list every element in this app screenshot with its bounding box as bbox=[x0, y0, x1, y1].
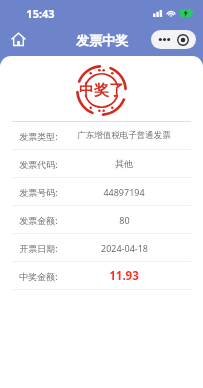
staticText: 广东增值税电子普通发票 bbox=[77, 130, 171, 141]
staticText: 2024-04-18 bbox=[101, 242, 148, 254]
button[interactable]: 发票号码: bbox=[0, 178, 203, 205]
staticText: 中奖金额: bbox=[19, 270, 58, 282]
staticText: 中奖了 bbox=[79, 81, 124, 100]
staticText: 发票中奖 bbox=[76, 32, 128, 48]
staticText: 发票金额: bbox=[19, 214, 58, 226]
staticText: 发票代码: bbox=[19, 158, 58, 170]
staticText: 15:43 bbox=[26, 6, 55, 21]
staticText: 44897194 bbox=[103, 186, 145, 198]
button[interactable]: More options bbox=[151, 30, 196, 49]
staticText: 其他 bbox=[115, 158, 133, 169]
staticText: 11.93 bbox=[109, 268, 139, 284]
staticText: 开票日期: bbox=[19, 242, 58, 254]
staticText: 80 bbox=[119, 214, 130, 226]
button[interactable]: Home bbox=[9, 30, 28, 49]
staticText: 发票类型: bbox=[19, 130, 58, 142]
button[interactable]: 开票日期: bbox=[0, 234, 203, 261]
button[interactable]: 发票类型: bbox=[0, 122, 203, 149]
button[interactable]: 发票金额: bbox=[0, 206, 203, 233]
button[interactable]: 发票代码: bbox=[0, 150, 203, 177]
staticText: 发票号码: bbox=[19, 186, 58, 198]
button[interactable]: 中奖金额: bbox=[0, 262, 203, 289]
